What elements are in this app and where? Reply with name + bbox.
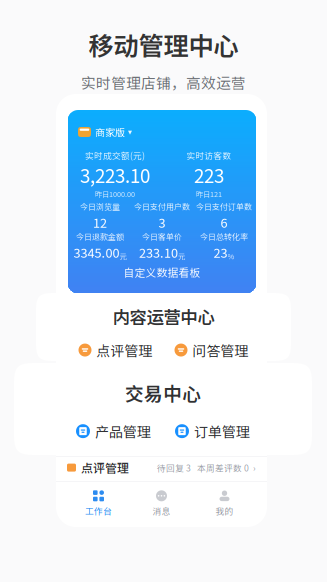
staticText: 工作台 <box>85 504 112 517</box>
staticText: 今日支付用户数 <box>134 200 190 212</box>
staticText: 点评管理 <box>96 340 152 360</box>
staticText: 订单管理 <box>194 421 250 441</box>
staticText: 今日浏览量 <box>80 200 120 212</box>
staticText: 元 <box>119 251 126 261</box>
staticText: 产品管理 <box>95 421 151 441</box>
button[interactable]: 产品管理 <box>76 419 151 443</box>
staticText: 3,223.10 <box>80 161 150 188</box>
staticText: 自定义数据看板 <box>123 264 200 280</box>
staticText: 12 <box>93 213 107 231</box>
button[interactable]: 我的 <box>193 488 256 520</box>
staticText: 问答管理 <box>192 340 248 360</box>
staticText: 今日退款金额 <box>76 230 124 242</box>
button[interactable]: 点评管理 <box>78 338 152 362</box>
staticText: 3 <box>158 213 165 231</box>
staticText: 实时管理店铺，高效运营 <box>81 72 246 93</box>
staticText: 223 <box>194 161 224 188</box>
staticText: 待回复 3 本周差评数 0 › <box>157 461 256 474</box>
staticText: 消息 <box>152 504 170 517</box>
button[interactable]: 工作台 <box>67 488 130 520</box>
staticText: 元 <box>178 251 185 261</box>
staticText: 内容运营中心 <box>112 304 214 329</box>
staticText: 交易中心 <box>125 379 201 406</box>
staticText: 3345.00 <box>73 243 119 261</box>
staticText: 点评管理 <box>81 459 129 476</box>
staticText: 今日支付订单数 <box>196 200 252 212</box>
staticText: 233.10 <box>139 243 178 261</box>
staticText: 今日总转化率 <box>200 230 248 242</box>
button[interactable]: 订单管理 <box>175 419 250 443</box>
staticText: 今日客单价 <box>142 230 182 242</box>
staticText: 23 <box>213 243 227 261</box>
staticText: % <box>227 251 234 261</box>
staticText: 我的 <box>215 504 233 517</box>
staticText: 昨日121 <box>196 188 222 199</box>
staticText: ▾ <box>128 127 132 137</box>
button[interactable]: 消息 <box>130 488 193 520</box>
staticText: 实时访客数 <box>186 149 231 161</box>
button[interactable]: 点评管理 <box>67 457 256 479</box>
staticText: 6 <box>220 213 227 231</box>
staticText: 实时成交额(元) <box>85 149 145 161</box>
staticText: 移动管理中心 <box>88 26 238 63</box>
staticText: 商家版 <box>95 125 125 139</box>
button[interactable]: 自定义数据看板 <box>102 265 222 279</box>
staticText: 昨日1000.00 <box>95 188 135 199</box>
button[interactable]: 问答管理 <box>174 338 248 362</box>
